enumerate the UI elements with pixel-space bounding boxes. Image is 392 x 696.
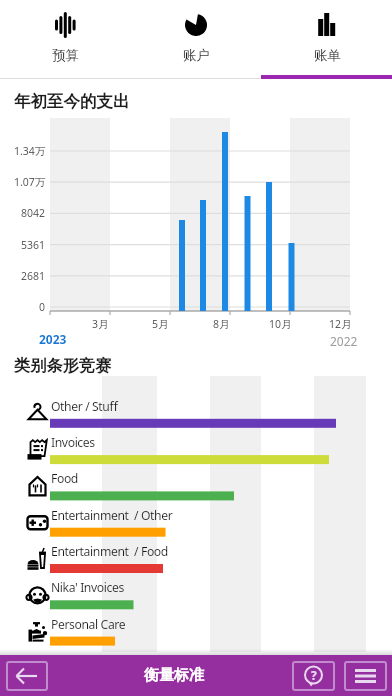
- staticText: 账户: [183, 47, 210, 64]
- button[interactable]: [0, 0, 131, 79]
- staticText: 5361: [21, 238, 46, 252]
- staticText: Other / Stuff: [51, 398, 118, 415]
- button[interactable]: ?: [292, 661, 335, 691]
- staticText: 8月: [213, 317, 230, 331]
- staticText: Food: [51, 470, 78, 487]
- staticText: 年初至今的支出: [14, 91, 130, 112]
- staticText: 1.34万: [14, 144, 46, 158]
- staticText: 类别条形竞赛: [14, 355, 112, 375]
- staticText: 8042: [21, 206, 46, 220]
- staticText: Entertainment / Food: [51, 543, 168, 560]
- staticText: Entertainment / Other: [51, 507, 173, 524]
- staticText: 12月: [329, 317, 352, 331]
- staticText: 5月: [152, 317, 169, 331]
- staticText: 2681: [21, 269, 46, 283]
- staticText: 3月: [92, 317, 109, 331]
- button[interactable]: [344, 661, 387, 691]
- staticText: Invoices: [51, 434, 95, 451]
- staticText: 0: [39, 300, 46, 314]
- staticText: 1.07万: [14, 175, 46, 189]
- button[interactable]: [262, 0, 392, 79]
- button[interactable]: [131, 0, 262, 79]
- staticText: 2022: [330, 333, 358, 349]
- staticText: Nika' Invoices: [51, 579, 124, 596]
- staticText: 10月: [269, 317, 292, 331]
- staticText: 2023: [39, 331, 67, 347]
- button[interactable]: [6, 661, 48, 691]
- staticText: ?: [311, 667, 317, 683]
- staticText: 预算: [52, 47, 79, 64]
- staticText: Personal Care: [51, 616, 126, 633]
- staticText: 衡量标准: [144, 666, 204, 685]
- staticText: 账单: [314, 47, 341, 64]
